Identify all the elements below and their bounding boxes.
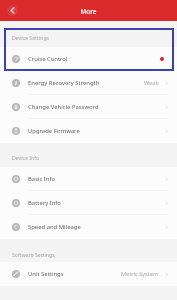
staticText: Battery Info [28, 199, 61, 207]
button[interactable]: Upgrade Firmware [0, 119, 177, 143]
staticText: Software Settings [12, 251, 55, 258]
staticText: More [80, 7, 97, 16]
staticText: Upgrade Firmware [28, 127, 80, 135]
staticText: Basic Info [28, 175, 56, 183]
staticText: Speed and Mileage [28, 223, 81, 231]
button[interactable]: Speed and Mileage [0, 215, 177, 239]
staticText: Metric System [121, 270, 159, 278]
staticText: Cruise Control [28, 55, 68, 63]
button[interactable]: Unit Settings [0, 262, 177, 286]
staticText: Weak [144, 79, 159, 87]
staticText: Unit Settings [28, 270, 64, 278]
staticText: Device Settings [12, 34, 50, 41]
button[interactable]: Energy Recovery Strength [0, 71, 177, 95]
button[interactable]: Cruise Control [0, 47, 177, 71]
button[interactable]: Back [7, 5, 18, 16]
staticText: Change Vehicle Password [28, 103, 99, 111]
staticText: Energy Recovery Strength [28, 79, 100, 87]
button[interactable]: Battery Info [0, 191, 177, 215]
staticText: Device Info [12, 154, 40, 161]
button[interactable]: Change Vehicle Password [0, 95, 177, 119]
button[interactable]: Basic Info [0, 167, 177, 191]
